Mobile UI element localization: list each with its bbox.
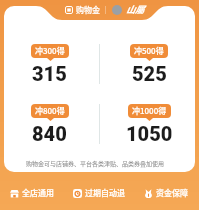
staticText: 过期自动退 — [85, 187, 125, 199]
staticText: 315 — [32, 62, 67, 85]
button[interactable]: 冲300得 — [0, 42, 99, 85]
staticText: 购物金可与店铺券、平台各类津贴、品类券叠加使用 — [0, 159, 190, 168]
staticText: 冲800得 — [35, 105, 65, 117]
staticText: 山屬 — [126, 3, 145, 16]
button[interactable]: 冲500得 — [99, 42, 199, 85]
button[interactable]: 全店通用 — [10, 187, 54, 199]
button[interactable]: 资金保障 — [144, 187, 188, 199]
staticText: 525 — [132, 62, 167, 85]
other: 购物金 — [65, 6, 73, 14]
staticText: 冲1000得 — [132, 105, 167, 117]
button[interactable]: 冲1000得 — [99, 102, 199, 145]
button[interactable]: 过期自动退 — [73, 187, 125, 199]
button[interactable]: 冲800得 — [0, 102, 99, 145]
staticText: 购物金 — [76, 4, 100, 16]
staticText: 资金保障 — [156, 187, 188, 199]
staticText: 冲300得 — [35, 45, 65, 57]
staticText: 全店通用 — [22, 187, 54, 199]
staticText: 冲500得 — [134, 45, 164, 57]
staticText: 1050 — [126, 122, 173, 145]
staticText: 840 — [32, 122, 67, 145]
